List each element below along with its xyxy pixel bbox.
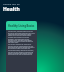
staticText: Getting Tips for — [3, 3, 20, 6]
staticText: Walk for thirty minutes a day. Stretch i… — [8, 44, 35, 49]
staticText: Health — [3, 6, 20, 13]
staticText: Eat whole foods and plenty of colourful … — [8, 37, 35, 43]
staticText: Track progress weekly, celebrate the sma… — [8, 50, 35, 55]
staticText: Healthy Living Basics — [8, 24, 35, 27]
button[interactable]: Healthy Living Basics — [6, 21, 37, 72]
staticText: Start with small, consistent habits that… — [8, 31, 35, 36]
